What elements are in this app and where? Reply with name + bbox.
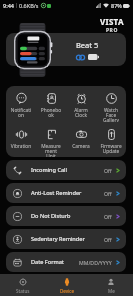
- button[interactable]: Phonebook: [36, 86, 66, 122]
- staticText: Incoming Call: [31, 166, 68, 174]
- button[interactable]: Device: [45, 274, 89, 296]
- button[interactable]: Incoming Call: [6, 160, 126, 180]
- button[interactable]: Alarm Clock: [66, 86, 96, 122]
- staticText: Date Format: [31, 258, 64, 266]
- staticText: PRO: [106, 27, 118, 34]
- staticText: VISTA: [100, 16, 124, 27]
- staticText: Off: [104, 236, 112, 243]
- staticText: Phonebook: [40, 107, 62, 118]
- button[interactable]: Date Format: [6, 252, 126, 272]
- button[interactable]: Camera: [66, 122, 96, 157]
- button[interactable]: Do Not Disturb: [6, 206, 126, 226]
- staticText: 9:44: [3, 2, 14, 9]
- staticText: Status: [16, 288, 30, 293]
- button[interactable]: Measurement Unit: [36, 122, 66, 157]
- staticText: Camera: [70, 143, 92, 150]
- staticText: Firmware Update: [100, 143, 122, 154]
- staticText: |: [15, 2, 18, 9]
- button[interactable]: Watch Face Gallery: [96, 86, 126, 122]
- button[interactable]: [6, 33, 126, 66]
- staticText: Beat 5: [76, 40, 99, 50]
- staticText: Notification: [10, 107, 32, 118]
- button[interactable]: Sedentary Reminder: [6, 229, 126, 249]
- staticText: 87%: [111, 2, 122, 9]
- staticText: Me: [108, 288, 115, 293]
- button[interactable]: Me: [89, 274, 133, 296]
- staticText: Off: [104, 167, 112, 174]
- staticText: 0.6KB/s: [19, 2, 39, 9]
- staticText: Off: [104, 190, 112, 197]
- button[interactable]: Notification: [6, 86, 36, 122]
- button[interactable]: Anti-Lost Reminder: [6, 183, 126, 203]
- staticText: Alarm Clock: [70, 107, 92, 118]
- staticText: Measurement Unit: [40, 143, 62, 157]
- staticText: Device: [60, 288, 75, 293]
- staticText: Off: [104, 213, 112, 220]
- button[interactable]: Vibration: [6, 122, 36, 157]
- staticText: MM/DD/YYYY: [79, 259, 112, 266]
- staticText: Do Not Disturb: [31, 212, 71, 220]
- staticText: Sedentary Reminder: [31, 235, 85, 243]
- button[interactable]: Status: [0, 274, 45, 296]
- staticText: Watch Face Gallery: [100, 107, 122, 122]
- staticText: Anti-Lost Reminder: [31, 189, 82, 197]
- staticText: Vibration: [10, 143, 32, 150]
- button[interactable]: Firmware Update: [96, 122, 126, 157]
